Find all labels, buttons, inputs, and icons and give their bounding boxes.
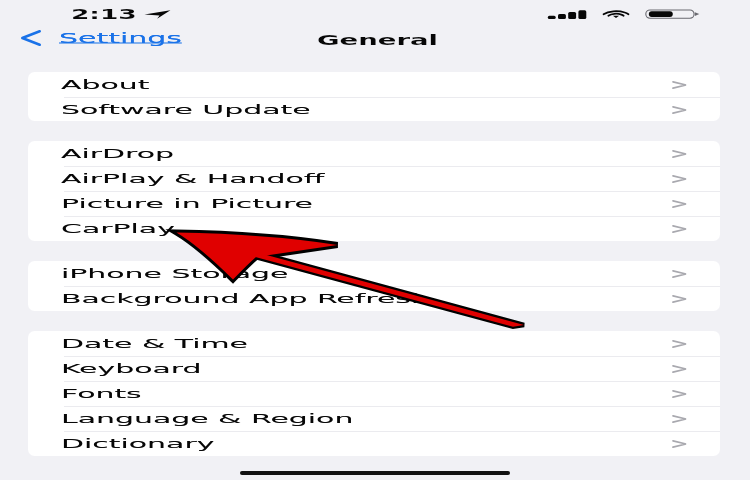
staticText: Keyboard bbox=[61, 361, 203, 376]
staticText: Picture in Picture bbox=[61, 196, 315, 211]
staticText: About bbox=[61, 77, 151, 92]
staticText: Date & Time bbox=[61, 336, 249, 351]
staticText: 2:13 bbox=[71, 6, 137, 22]
staticText: Fonts bbox=[61, 386, 142, 401]
staticText: Settings bbox=[59, 30, 182, 46]
staticText: Keyboard bbox=[61, 361, 203, 376]
staticText: AirDrop bbox=[61, 146, 175, 161]
button[interactable]: Keyboard bbox=[28, 356, 720, 381]
staticText: Fonts bbox=[61, 386, 142, 401]
staticText: Background App Refresh bbox=[61, 291, 431, 306]
staticText: Language & Region bbox=[61, 411, 355, 426]
staticText: Dictionary bbox=[61, 436, 215, 451]
other: Location active bbox=[143, 8, 172, 21]
button[interactable]: CarPlay bbox=[28, 216, 720, 241]
button[interactable]: Settings bbox=[21, 26, 98, 50]
staticText: Settings bbox=[59, 30, 182, 46]
staticText: Software Update bbox=[61, 102, 313, 117]
button[interactable]: Picture in Picture bbox=[28, 191, 720, 216]
staticText: Dictionary bbox=[61, 436, 215, 451]
staticText: About bbox=[61, 77, 151, 92]
button[interactable]: Fonts bbox=[28, 381, 720, 406]
staticText: General bbox=[317, 32, 440, 48]
button[interactable]: About bbox=[28, 72, 720, 97]
staticText: AirPlay & Handoff bbox=[61, 171, 325, 186]
button[interactable]: Background App Refresh bbox=[28, 286, 720, 311]
button[interactable]: Software Update bbox=[28, 97, 720, 121]
staticText: iPhone Storage bbox=[61, 266, 289, 281]
other: Cellular signal bbox=[547, 9, 586, 19]
button[interactable]: Language & Region bbox=[28, 406, 720, 431]
button[interactable]: AirPlay & Handoff bbox=[28, 166, 720, 191]
staticText: Date & Time bbox=[61, 336, 249, 351]
button[interactable]: Dictionary bbox=[28, 431, 720, 456]
staticText: CarPlay bbox=[61, 221, 175, 236]
staticText: AirPlay & Handoff bbox=[61, 171, 325, 186]
staticText: CarPlay bbox=[61, 221, 175, 236]
other: Wi-Fi bbox=[598, 8, 635, 20]
staticText: Background App Refresh bbox=[61, 291, 431, 306]
staticText: AirDrop bbox=[61, 146, 175, 161]
staticText: Picture in Picture bbox=[61, 196, 315, 211]
button[interactable]: iPhone Storage bbox=[28, 261, 720, 286]
other: Battery bbox=[644, 8, 700, 20]
staticText: iPhone Storage bbox=[61, 266, 289, 281]
staticText: Software Update bbox=[61, 102, 313, 117]
button[interactable]: Date & Time bbox=[28, 331, 720, 356]
button[interactable]: AirDrop bbox=[28, 141, 720, 166]
staticText: Language & Region bbox=[61, 411, 355, 426]
